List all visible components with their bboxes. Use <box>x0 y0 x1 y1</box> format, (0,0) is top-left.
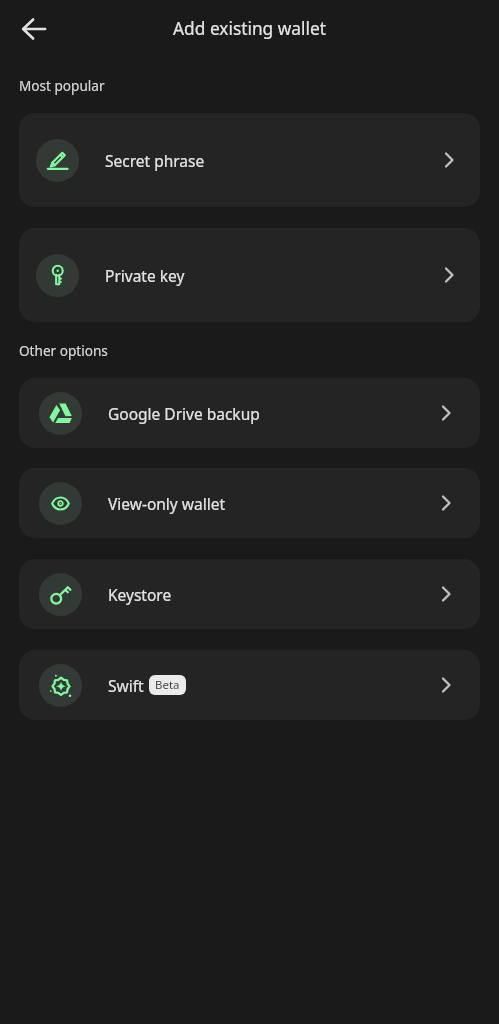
button[interactable]: Back <box>10 5 58 53</box>
staticText: Private key <box>105 265 185 286</box>
button[interactable]: Keystore <box>19 559 480 629</box>
staticText: Most popular <box>19 76 105 95</box>
staticText: Secret phrase <box>105 150 205 171</box>
button[interactable]: Swift <box>19 650 480 720</box>
button[interactable]: Private key <box>19 228 480 322</box>
staticText: Add existing wallet <box>173 17 326 41</box>
button[interactable]: View-only wallet <box>19 468 480 538</box>
staticText: Other options <box>19 341 108 360</box>
staticText: View-only wallet <box>108 493 226 514</box>
button[interactable]: Google Drive backup <box>19 378 480 448</box>
staticText: Google Drive backup <box>108 403 260 424</box>
staticText: Keystore <box>108 584 172 605</box>
staticText: Swift <box>108 675 144 696</box>
button[interactable]: Secret phrase <box>19 113 480 207</box>
staticText: Beta <box>155 677 180 693</box>
